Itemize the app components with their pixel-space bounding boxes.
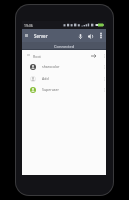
button[interactable]: Item options: [101, 64, 107, 70]
button[interactable]: sharocolor: [22, 61, 106, 72]
button[interactable]: Root: [22, 50, 106, 61]
staticText: Connected: [54, 44, 75, 49]
staticText: Add: [42, 76, 49, 81]
button[interactable]: More options: [96, 31, 105, 40]
button[interactable]: Item options: [101, 87, 107, 93]
staticText: 19:36: [24, 23, 33, 28]
staticText: Superuser: [42, 87, 59, 92]
staticText: Root: [33, 54, 41, 59]
button[interactable]: Add: [22, 73, 106, 84]
button[interactable]: Item options: [101, 76, 107, 82]
button[interactable]: Navigation menu: [22, 31, 31, 40]
button[interactable]: Superuser: [22, 84, 106, 95]
staticText: sharocolor: [42, 64, 60, 69]
button[interactable]: Volume: [85, 31, 95, 41]
staticText: Server: [34, 33, 48, 39]
button[interactable]: Options: [101, 53, 107, 59]
button[interactable]: Connected: [22, 42, 106, 50]
button[interactable]: Voice search: [75, 31, 85, 41]
